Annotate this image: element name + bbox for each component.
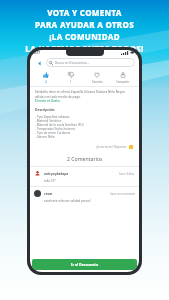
staticText: Busca en Descuentos... [55, 61, 90, 65]
button[interactable]: cesar [30, 187, 139, 206]
button[interactable]: Ir al Descuento [32, 259, 137, 270]
button[interactable]: 1 [58, 69, 84, 86]
staticText: 4:17 [34, 51, 40, 55]
button[interactable]: Compartir [110, 69, 136, 86]
button[interactable]: Favorito [84, 69, 110, 86]
staticText: - Género Niño [35, 135, 55, 139]
button[interactable]: Back [34, 58, 44, 68]
staticText: Descripción: [35, 107, 56, 111]
button[interactable]: 4 [33, 69, 58, 86]
staticText: - Temporada Otoño-Invierno [35, 127, 76, 131]
button[interactable]: Busca en Descuentos... [46, 58, 135, 67]
staticText: LA HACEMOS ENTRE TODOS! [25, 43, 144, 54]
staticText: cesar [44, 192, 53, 196]
staticText: - Material de la suela Sintético (PU) [35, 123, 84, 127]
staticText: excelente relacion calidad precio! [44, 199, 91, 203]
staticText: El envío es Gratis. [35, 99, 61, 103]
staticText: Falabella tiene en oferta Zapatilla Urba… [35, 90, 134, 99]
staticText: Compartir [116, 80, 130, 84]
staticText: nattyoydadapa [44, 172, 69, 176]
staticText: 4 [45, 80, 47, 84]
staticText: ¡LA COMUNIDAD [49, 31, 120, 42]
staticText: Favorito [92, 80, 103, 84]
staticText: VOTA Y COMENTA [47, 7, 122, 18]
staticText: - Material Sintético [35, 119, 62, 123]
staticText: Ir al Descuento [71, 262, 99, 267]
staticText: - Tipo Zapatillas urbanas [35, 115, 70, 119]
staticText: hace un momento [110, 192, 135, 196]
staticText: PARA AYUDAR A OTROS [35, 19, 134, 30]
button[interactable]: nattyoydadapa [30, 167, 139, 186]
staticText: 1 [70, 80, 72, 84]
staticText: hace 4 días [119, 172, 135, 176]
staticText: - Tipo de cierre Cordones [35, 131, 71, 135]
button[interactable]: ¿Incorrecto? Reportar [95, 144, 134, 150]
staticText: ¿Incorrecto? Reportar [96, 145, 127, 149]
staticText: talla 37? [44, 179, 56, 183]
staticText: 2 Comentarios [67, 155, 103, 162]
